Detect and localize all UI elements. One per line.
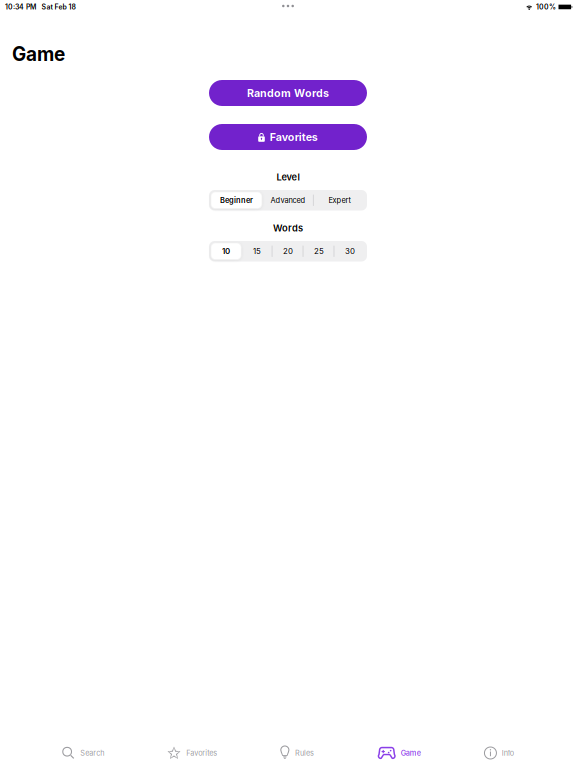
button[interactable]: 20 xyxy=(272,241,303,261)
staticText: 10 xyxy=(222,246,230,256)
staticText: Favorites xyxy=(270,130,318,143)
staticText: 15 xyxy=(253,246,261,256)
button[interactable]: Favorites xyxy=(167,741,217,765)
staticText: Level xyxy=(276,171,299,183)
staticText: Random Words xyxy=(247,86,329,99)
button[interactable]: 30 xyxy=(334,241,365,261)
staticText: 20 xyxy=(283,246,293,256)
staticText: Sat Feb 18 xyxy=(41,3,75,11)
staticText: Favorites xyxy=(186,749,217,757)
staticText: Words xyxy=(273,222,303,234)
staticText: 30 xyxy=(345,246,355,256)
staticText: Beginner xyxy=(220,196,253,205)
button[interactable]: Beginner xyxy=(211,190,262,210)
button[interactable]: Advanced xyxy=(262,190,314,210)
staticText: Game xyxy=(401,749,421,757)
button[interactable]: Info xyxy=(484,741,514,765)
staticText: 10:34 PM xyxy=(5,3,36,11)
staticText: Expert xyxy=(329,196,351,205)
staticText: Advanced xyxy=(270,196,305,205)
button[interactable]: Game xyxy=(377,741,421,765)
staticText: Search xyxy=(80,749,104,757)
staticText: Info xyxy=(502,749,514,757)
staticText: Game xyxy=(12,42,65,65)
button[interactable]: 10 xyxy=(211,241,242,261)
staticText: 25 xyxy=(314,246,324,256)
button[interactable]: 15 xyxy=(242,241,273,261)
button[interactable]: Expert xyxy=(314,190,365,210)
staticText: 100% xyxy=(536,3,556,11)
button[interactable]: 25 xyxy=(303,241,334,261)
button[interactable]: Search xyxy=(62,741,104,765)
button[interactable]: Favorites xyxy=(209,124,367,150)
button[interactable]: Rules xyxy=(280,741,314,765)
button[interactable]: Random Words xyxy=(209,80,367,106)
staticText: Rules xyxy=(295,749,314,757)
